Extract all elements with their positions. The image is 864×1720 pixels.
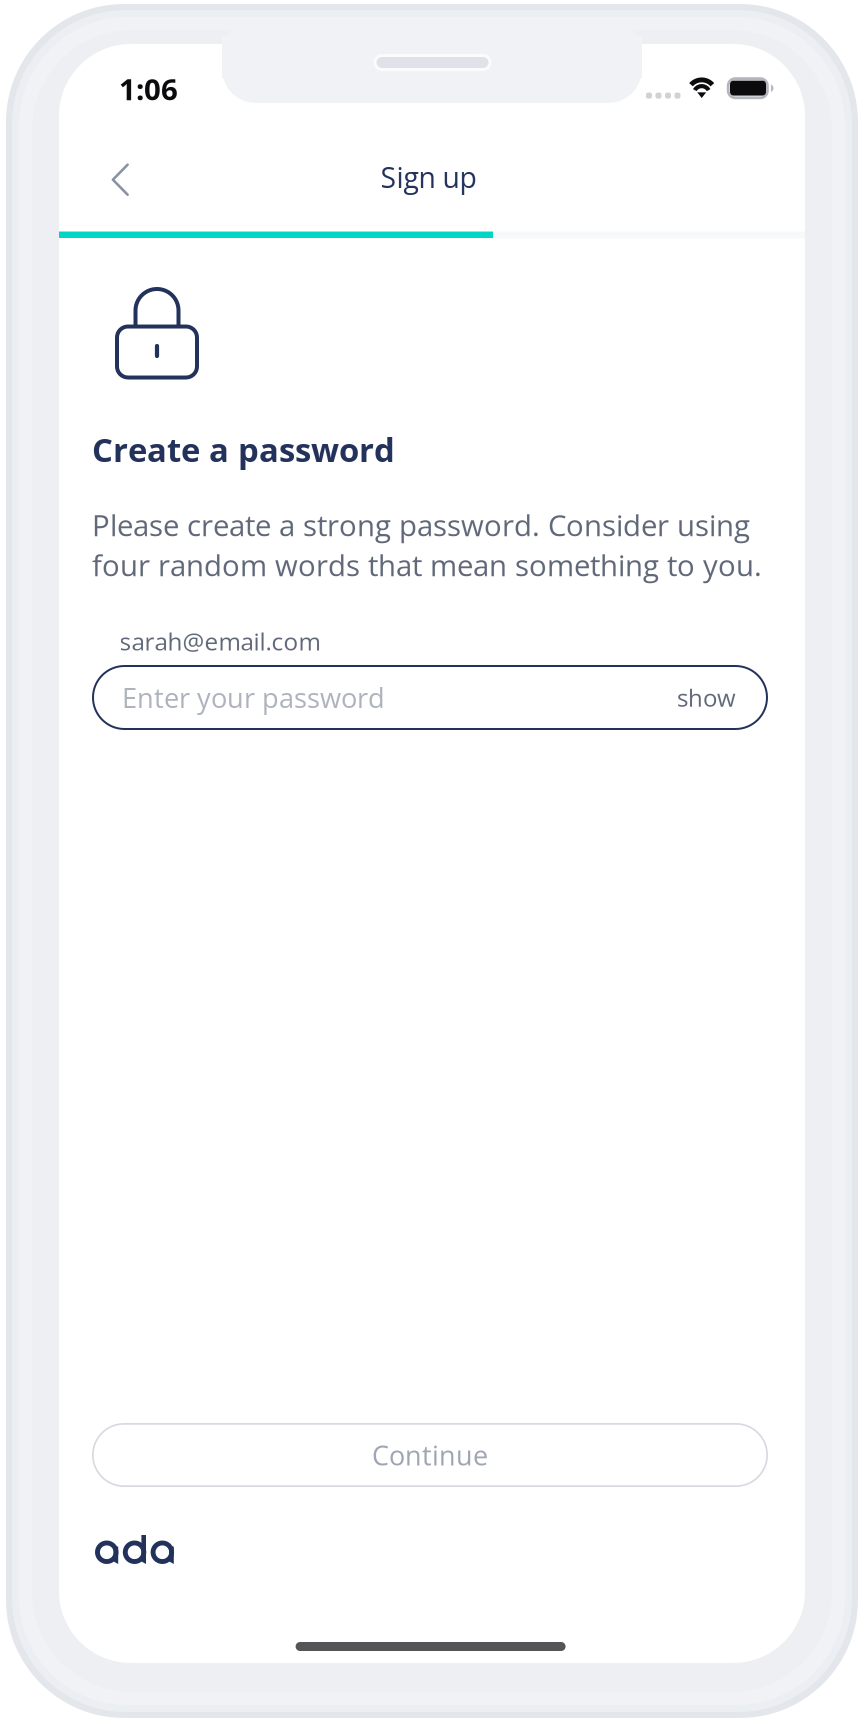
button[interactable]: Continue: [92, 1423, 768, 1487]
staticText: Please create a strong password. Conside…: [92, 505, 762, 585]
staticText: Create a password: [92, 427, 395, 472]
staticText: Enter your password: [122, 679, 385, 716]
staticText: sarah@email.com: [119, 624, 320, 657]
button[interactable]: Back: [81, 140, 159, 218]
staticText: Sign up: [381, 158, 477, 196]
staticText: Continue: [372, 1437, 488, 1473]
staticText: 1:06: [119, 69, 178, 109]
button[interactable]: Enter your password: [92, 665, 768, 730]
staticText: show: [677, 681, 736, 714]
